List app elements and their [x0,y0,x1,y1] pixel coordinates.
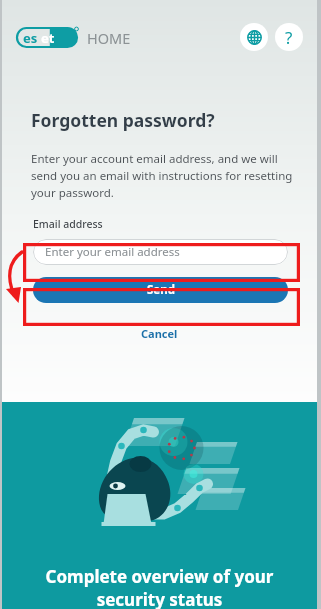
staticText: Enter your email address [45,244,180,260]
staticText: es [23,29,38,47]
button[interactable]: Enter your email address [33,239,288,265]
button[interactable]: Send [33,277,288,303]
staticText: Complete overview of your security statu… [14,565,305,609]
button[interactable]: Help [275,23,303,51]
staticText: et [41,29,55,47]
staticText: Email address [33,217,103,231]
button[interactable]: Cancel [135,320,184,347]
staticText: Cancel [141,326,178,341]
staticText: ? [285,26,293,49]
staticText: HOME [87,28,131,48]
button[interactable]: ESET HOME [16,27,131,48]
staticText: Send [147,282,175,298]
button[interactable]: Language [240,23,268,51]
staticText: Enter your account email address, and we… [31,151,295,201]
staticText: Forgotten password? [31,108,215,132]
